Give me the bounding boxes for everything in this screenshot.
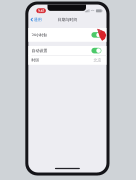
staticText: 通用 [34, 17, 42, 22]
button[interactable]: 时区 [28, 56, 106, 65]
staticText: 日期与时间 [57, 17, 77, 22]
staticText: 9:41 [38, 8, 45, 13]
staticText: 24小时制 [31, 32, 47, 37]
button[interactable]: 自动设置 [28, 46, 106, 55]
staticText: 北京 [93, 58, 101, 63]
button[interactable]: 通用 [28, 14, 42, 23]
staticText: 自动设置 [31, 48, 47, 53]
staticText: 时区 [31, 58, 39, 63]
button[interactable]: 24小时制 [28, 28, 106, 42]
